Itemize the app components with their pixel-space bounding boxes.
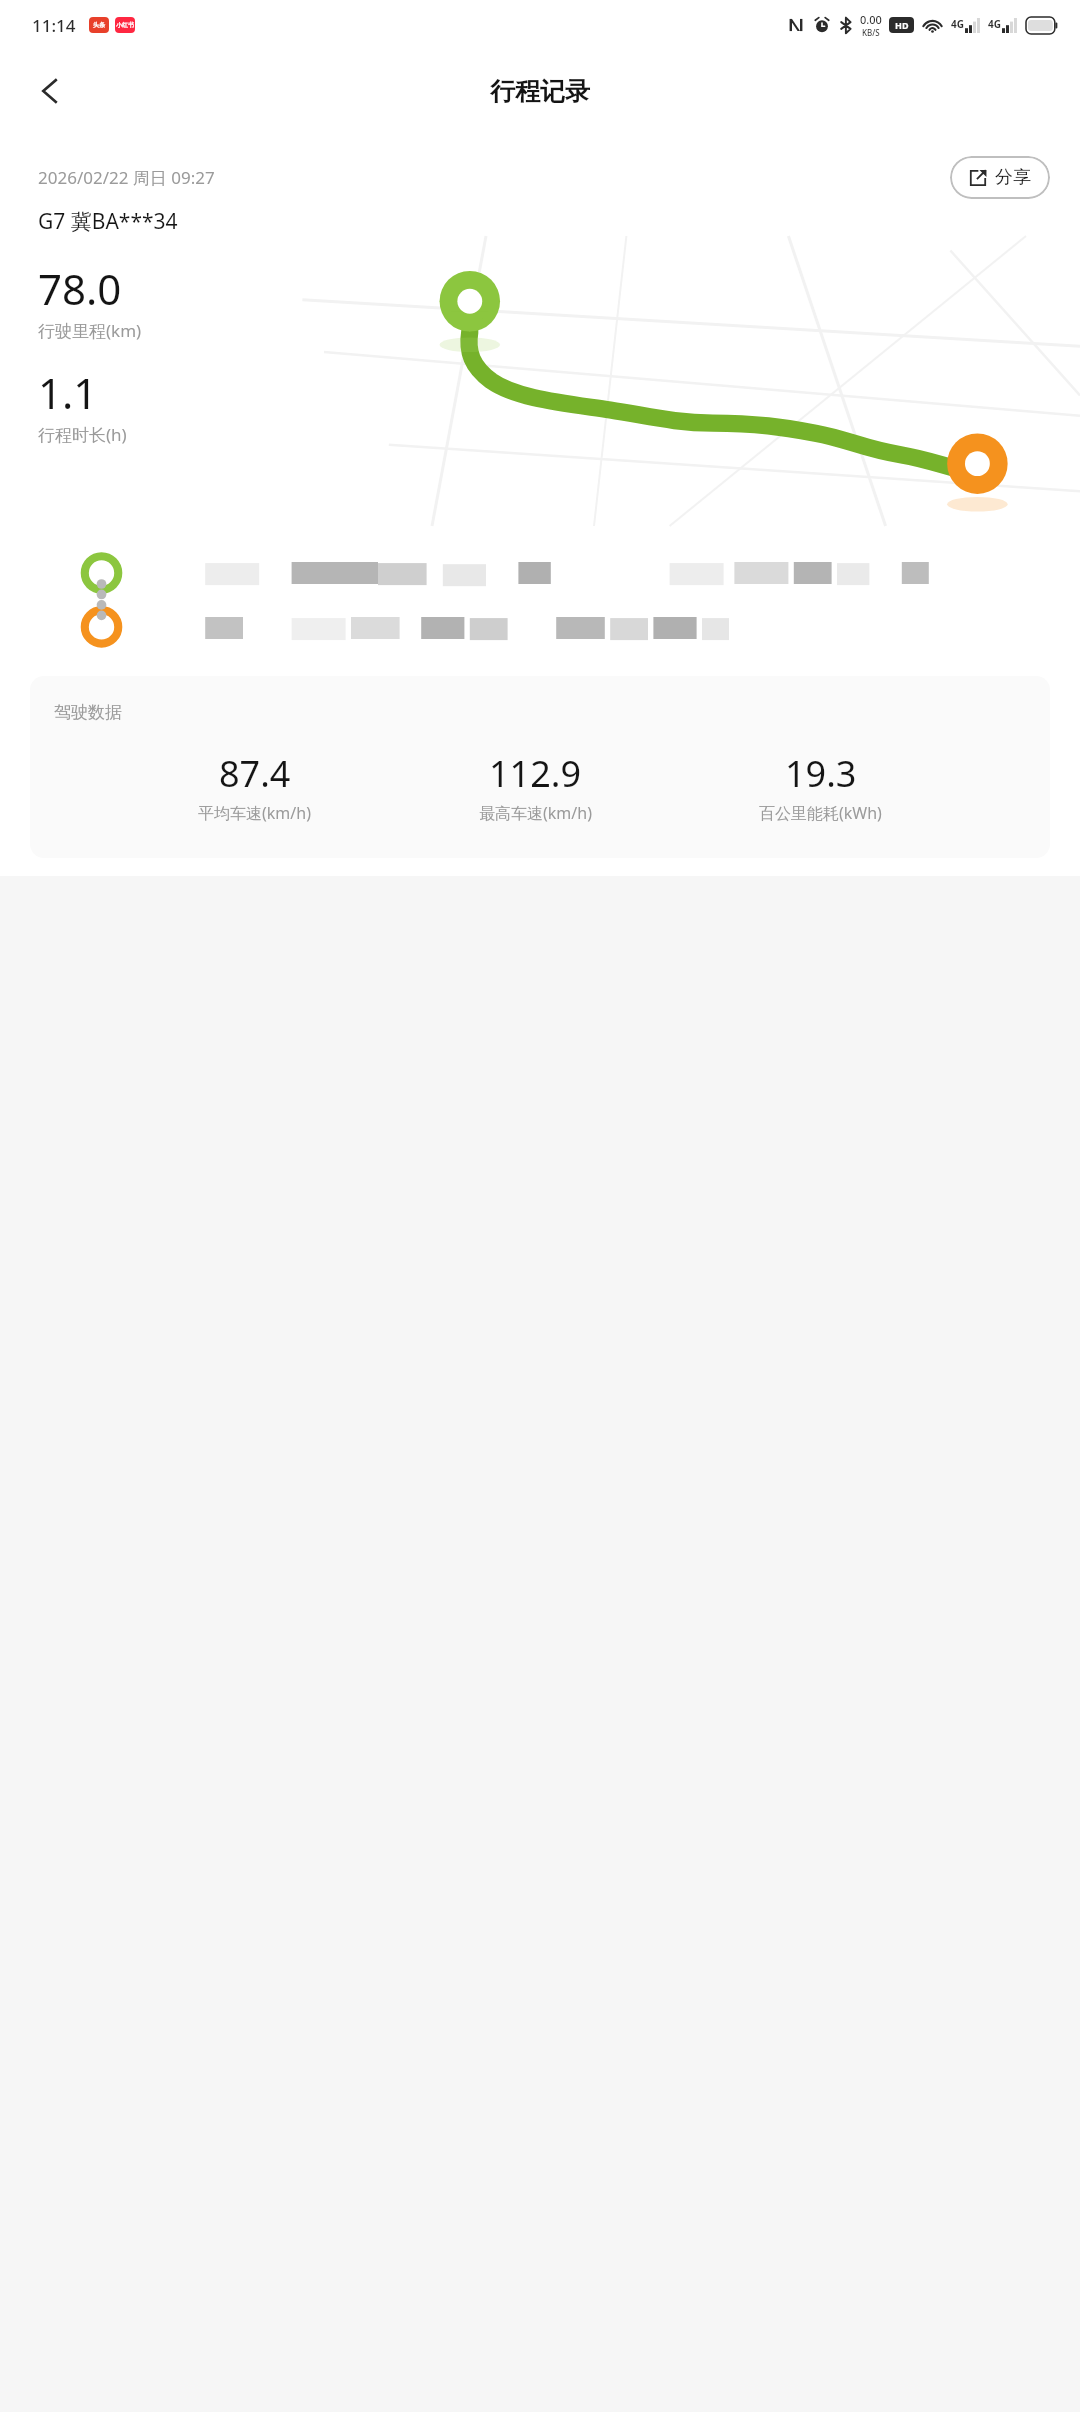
staticText: KB/S (862, 27, 880, 38)
staticText: 行程时长(h) (38, 423, 127, 446)
staticText: 0.00 (860, 12, 882, 27)
button[interactable]: 分享 (950, 156, 1050, 199)
staticText: 驾驶数据 (54, 702, 122, 723)
staticText: 百公里能耗(kWh) (759, 802, 882, 824)
staticText: 112.9 (489, 749, 582, 798)
staticText: 11:14 (32, 14, 76, 37)
staticText: 行驶里程(km) (38, 319, 142, 342)
staticText: 小红书 (116, 21, 134, 29)
staticText: 2026/02/22 周日 09:27 (38, 166, 215, 189)
staticText: 最高车速(km/h) (479, 802, 592, 824)
staticText: 行程记录 (490, 76, 590, 107)
staticText: 4G (988, 17, 1001, 31)
staticText: 分享 (995, 166, 1031, 189)
button[interactable]: Back (20, 61, 80, 121)
staticText: 19.3 (785, 749, 857, 798)
staticText: 头条 (93, 21, 105, 29)
staticText: 78.0 (38, 260, 122, 317)
staticText: 平均车速(km/h) (198, 802, 311, 824)
staticText: 87.4 (219, 749, 291, 798)
staticText: 4G (951, 17, 964, 31)
staticText: G7 冀BA***34 (38, 207, 178, 236)
staticText: HD (895, 19, 909, 31)
staticText: 1.1 (38, 364, 98, 421)
